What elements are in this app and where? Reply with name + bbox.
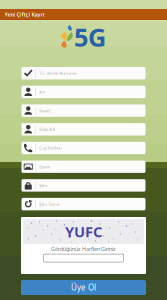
button[interactable]: T.C. Kimlik Numarası: [21, 67, 145, 79]
staticText: Üye Ol: [71, 282, 96, 293]
staticText: 5G: [74, 20, 106, 54]
button[interactable]: Eposta: [21, 160, 145, 173]
staticText: Şifre: [39, 183, 47, 188]
staticText: Cep Telefonu: [39, 145, 61, 151]
button[interactable]: Ad: [21, 86, 145, 98]
staticText: Yeni Çiftçi Kayıt: [4, 11, 44, 18]
staticText: T.C. Kimlik Numarası: [39, 70, 77, 76]
button[interactable]: Soyad: [21, 104, 145, 117]
button[interactable]: Şifre: [21, 179, 145, 192]
button[interactable]: [43, 254, 123, 262]
staticText: Şifre Tekrar: [39, 201, 60, 207]
staticText: Eposta: [39, 164, 50, 169]
button[interactable]: Şifre Tekrar: [21, 198, 145, 210]
button[interactable]: Yeni Çiftçi Kayıt: [0, 9, 167, 20]
staticText: Ad: [39, 89, 44, 94]
button[interactable]: Baba Adı: [21, 123, 145, 135]
staticText: Soyad: [39, 108, 49, 113]
staticText: YUFC: [65, 222, 102, 241]
staticText: Baba Adı: [39, 127, 55, 132]
button[interactable]: Üye Ol: [21, 280, 146, 295]
staticText: Gördüğünüz Harfleri Giriniz: [51, 245, 116, 253]
button[interactable]: Cep Telefonu: [21, 142, 145, 154]
